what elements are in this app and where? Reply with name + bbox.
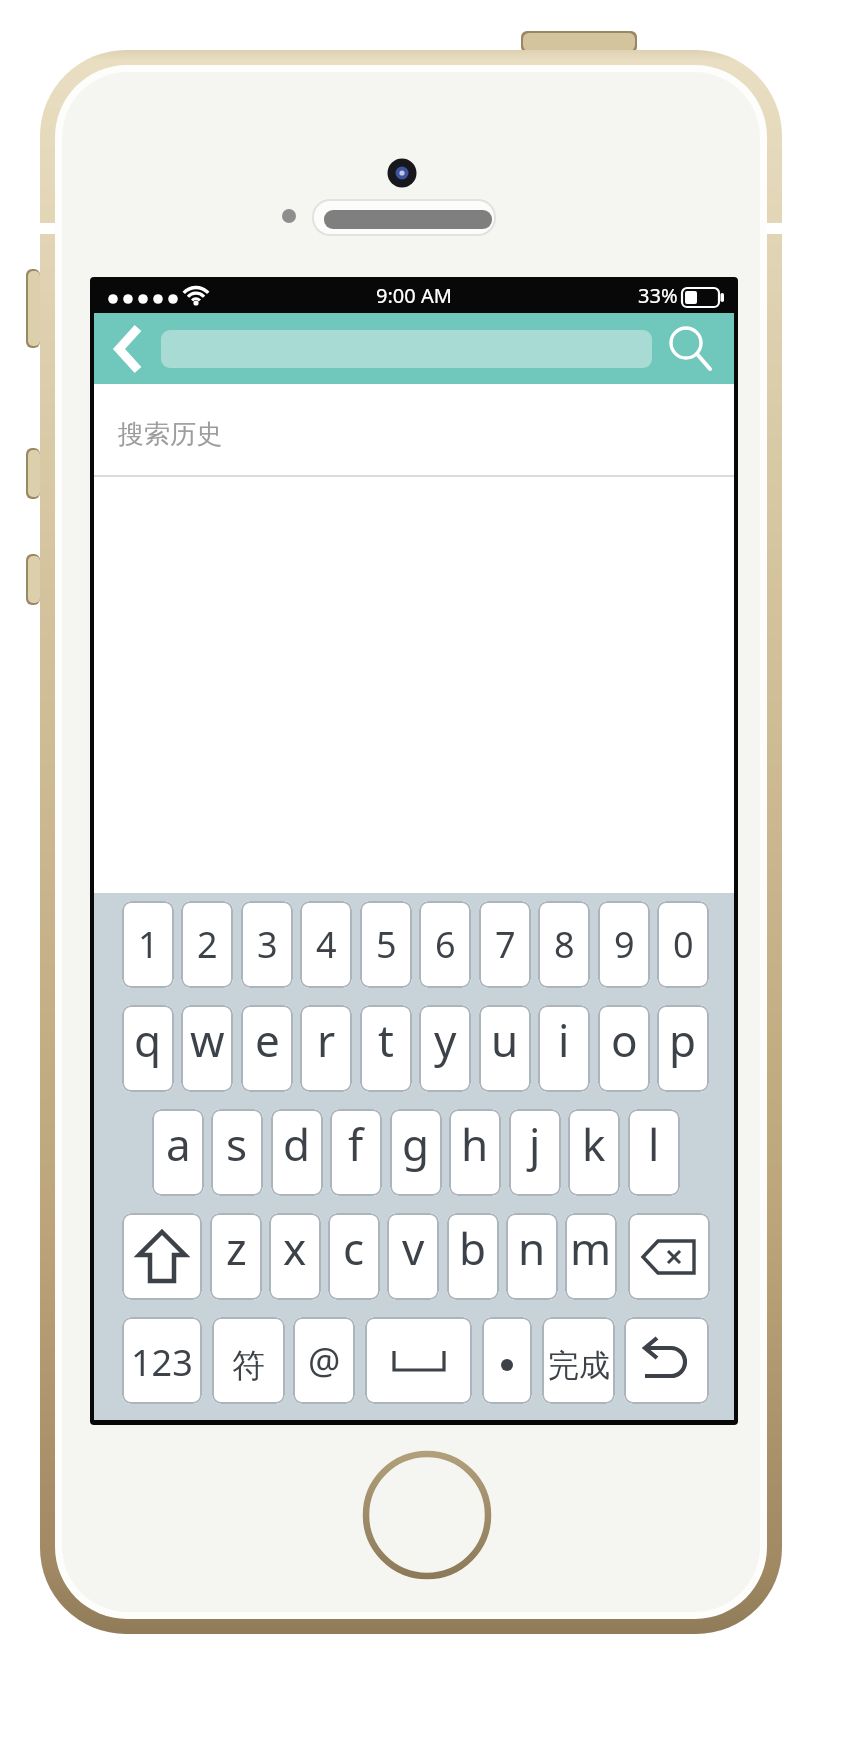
button[interactable] xyxy=(482,1317,532,1404)
staticText: 符 xyxy=(232,1345,265,1387)
staticText: 123 xyxy=(131,1338,193,1387)
button[interactable]: n xyxy=(506,1213,558,1300)
staticText: i xyxy=(558,1010,570,1070)
staticText: w xyxy=(190,1010,225,1070)
staticText: 0 xyxy=(673,920,694,969)
staticText: s xyxy=(226,1114,248,1174)
staticText: 2 xyxy=(197,920,218,969)
button[interactable]: 符 xyxy=(212,1317,285,1404)
staticText: 7 xyxy=(495,920,516,969)
button[interactable]: j xyxy=(509,1109,561,1196)
staticText: 5 xyxy=(376,920,397,969)
staticText: x xyxy=(283,1218,307,1278)
staticText: 搜索历史 xyxy=(118,418,222,451)
staticText: 6 xyxy=(435,920,456,969)
button[interactable]: w xyxy=(181,1005,233,1092)
staticText: q xyxy=(134,1010,162,1070)
staticText: 完成 xyxy=(548,1346,610,1385)
button[interactable]: 6 xyxy=(419,901,471,988)
button[interactable] xyxy=(628,1213,710,1300)
staticText: h xyxy=(461,1114,489,1174)
button[interactable]: p xyxy=(657,1005,709,1092)
button[interactable]: s xyxy=(211,1109,263,1196)
button[interactable]: 123 xyxy=(122,1317,202,1404)
button[interactable]: y xyxy=(419,1005,471,1092)
button[interactable] xyxy=(122,1213,202,1300)
staticText: g xyxy=(402,1114,430,1174)
staticText: e xyxy=(255,1010,280,1070)
staticText: u xyxy=(491,1010,519,1070)
button[interactable]: 7 xyxy=(479,901,531,988)
staticText: c xyxy=(343,1218,365,1278)
button[interactable]: l xyxy=(628,1109,680,1196)
staticText: d xyxy=(283,1114,311,1174)
button[interactable]: 9 xyxy=(598,901,650,988)
button[interactable] xyxy=(365,1317,472,1404)
button[interactable] xyxy=(658,314,718,380)
staticText: z xyxy=(226,1218,247,1278)
staticText: p xyxy=(669,1010,697,1070)
button[interactable]: u xyxy=(479,1005,531,1092)
button[interactable]: t xyxy=(360,1005,412,1092)
button[interactable]: 5 xyxy=(360,901,412,988)
staticText: 1 xyxy=(138,920,159,969)
button[interactable]: g xyxy=(390,1109,442,1196)
button[interactable]: r xyxy=(300,1005,352,1092)
staticText: 9 xyxy=(614,920,635,969)
staticText: o xyxy=(611,1010,638,1070)
button[interactable] xyxy=(102,318,154,380)
button[interactable]: q xyxy=(122,1005,174,1092)
staticText: b xyxy=(459,1218,487,1278)
button[interactable]: b xyxy=(447,1213,499,1300)
staticText: k xyxy=(582,1114,606,1174)
button[interactable]: v xyxy=(387,1213,439,1300)
button[interactable]: 完成 xyxy=(542,1317,615,1404)
staticText: @ xyxy=(308,1336,341,1385)
button[interactable]: 0 xyxy=(657,901,709,988)
button[interactable]: @ xyxy=(293,1317,355,1404)
button[interactable]: z xyxy=(210,1213,262,1300)
button[interactable] xyxy=(624,1317,709,1404)
staticText: n xyxy=(518,1218,546,1278)
button[interactable]: f xyxy=(330,1109,382,1196)
button[interactable]: 1 xyxy=(122,901,174,988)
button[interactable]: x xyxy=(269,1213,321,1300)
staticText: 33% xyxy=(638,282,678,309)
button[interactable]: 2 xyxy=(181,901,233,988)
button[interactable]: i xyxy=(538,1005,590,1092)
button[interactable]: e xyxy=(241,1005,293,1092)
staticText: 8 xyxy=(554,920,575,969)
staticText: l xyxy=(648,1114,660,1174)
staticText: 3 xyxy=(257,920,278,969)
button[interactable]: d xyxy=(271,1109,323,1196)
button[interactable]: 4 xyxy=(300,901,352,988)
staticText: a xyxy=(166,1114,191,1174)
staticText: y xyxy=(434,1010,457,1070)
staticText: r xyxy=(317,1010,336,1070)
staticText: t xyxy=(378,1010,394,1070)
button[interactable]: m xyxy=(565,1213,617,1300)
button[interactable]: 3 xyxy=(241,901,293,988)
staticText: f xyxy=(348,1114,364,1174)
button[interactable]: o xyxy=(598,1005,650,1092)
button[interactable]: 8 xyxy=(538,901,590,988)
staticText: m xyxy=(570,1218,612,1278)
button[interactable]: h xyxy=(449,1109,501,1196)
staticText: 4 xyxy=(316,920,337,969)
staticText: 9:00 AM xyxy=(376,282,452,309)
button[interactable] xyxy=(161,330,652,368)
button[interactable]: k xyxy=(568,1109,620,1196)
staticText: v xyxy=(402,1218,425,1278)
staticText: j xyxy=(529,1114,541,1174)
button[interactable]: c xyxy=(328,1213,380,1300)
button[interactable]: a xyxy=(152,1109,204,1196)
